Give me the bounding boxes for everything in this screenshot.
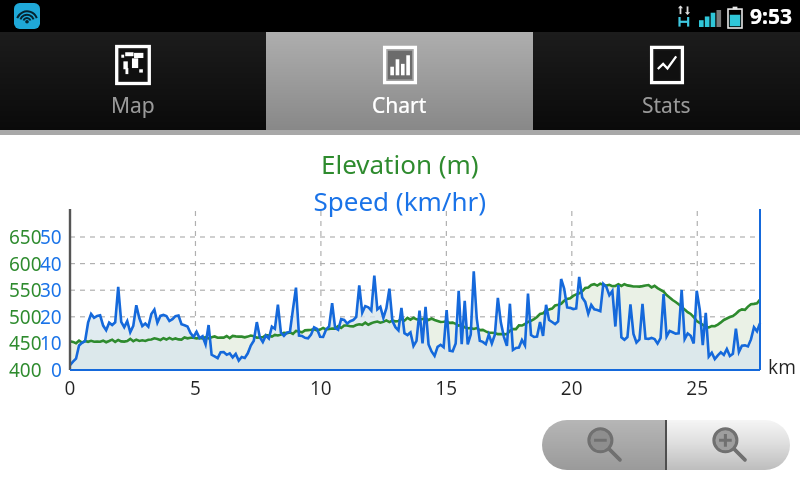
button[interactable]: Stats (533, 32, 800, 130)
staticText: Map (111, 91, 155, 120)
staticText: 9:53 (750, 2, 792, 31)
button[interactable]: Map (0, 32, 266, 130)
staticText: Chart (372, 91, 427, 120)
button[interactable]: Zoom in (667, 420, 790, 470)
staticText: Stats (642, 91, 691, 120)
button[interactable]: Zoom out (542, 420, 665, 470)
button[interactable]: Chart (266, 32, 533, 130)
